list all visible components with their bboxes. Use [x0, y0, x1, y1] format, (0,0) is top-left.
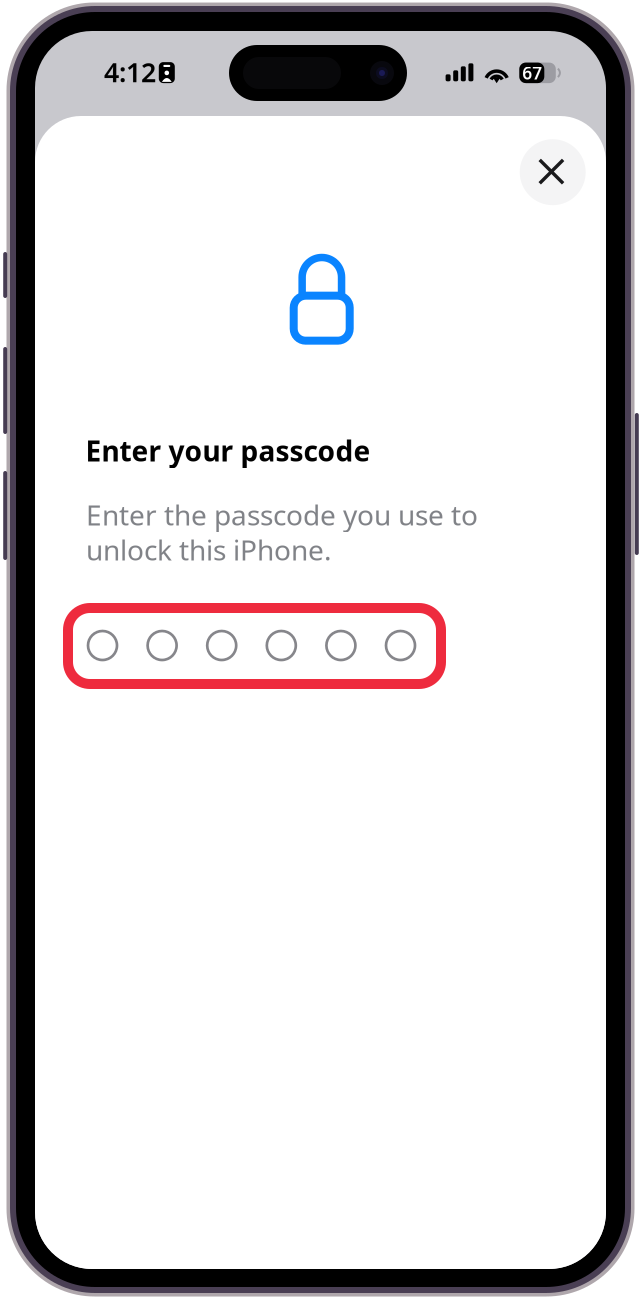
staticText: 67 — [522, 61, 542, 84]
staticText: 4:12 — [104, 54, 156, 90]
staticText: unlock this iPhone. — [86, 531, 332, 568]
staticText: Enter the passcode you use to — [86, 496, 478, 533]
button[interactable]: Close — [520, 139, 586, 205]
staticText: Enter your passcode — [85, 432, 370, 469]
